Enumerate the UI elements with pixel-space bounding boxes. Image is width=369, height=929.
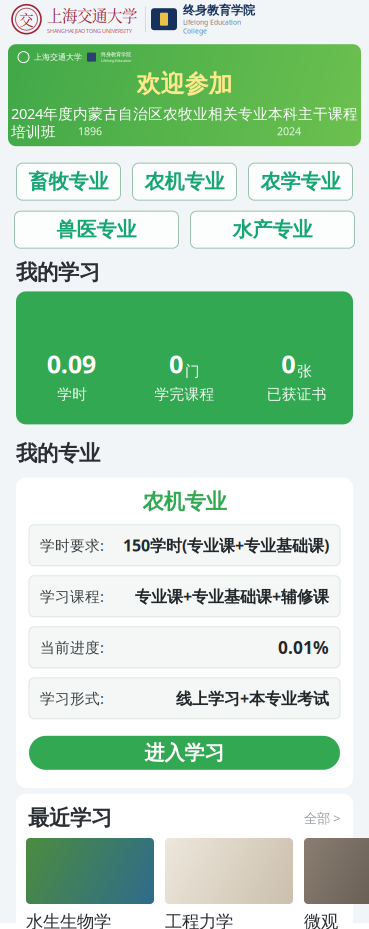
staticText: 2024: [277, 124, 301, 138]
staticText: 水产专业: [232, 217, 312, 242]
button[interactable]: 兽医专业: [14, 211, 178, 248]
staticText: 150学时(专业课+专业基础课): [123, 535, 329, 556]
button[interactable]: 工程力学: [165, 838, 293, 929]
staticText: 学时要求:: [40, 536, 104, 555]
button[interactable]: 水生生物学: [26, 838, 154, 929]
button[interactable]: 农机专业: [132, 163, 236, 200]
staticText: 学习课程:: [40, 587, 104, 606]
staticText: 0.09: [47, 347, 96, 380]
staticText: 终身教育学院: [101, 51, 131, 58]
staticText: 交: [19, 9, 34, 30]
staticText: 学完课程: [154, 385, 214, 403]
button[interactable]: 进入学习: [29, 736, 340, 770]
button[interactable]: 水产专业: [190, 211, 354, 248]
staticText: Lifelong Education: [101, 58, 131, 63]
staticText: 全部 >: [304, 809, 341, 827]
staticText: 张: [297, 362, 312, 380]
staticText: 最近学习: [28, 805, 112, 831]
staticText: 0: [169, 347, 183, 380]
staticText: College: [183, 27, 207, 35]
staticText: 农机专业: [144, 169, 224, 194]
staticText: 我的专业: [16, 440, 100, 467]
staticText: 已获证书: [267, 385, 327, 403]
button[interactable]: 农学专业: [248, 163, 352, 200]
staticText: 学时: [57, 385, 87, 403]
staticText: 进入学习: [144, 740, 224, 765]
staticText: 兽医专业: [56, 217, 136, 242]
staticText: 上海交通大学: [47, 4, 137, 26]
staticText: 学习形式:: [40, 689, 104, 708]
staticText: 终身教育学院: [183, 3, 255, 18]
staticText: 农学专业: [260, 169, 340, 194]
staticText: 欢迎参加: [136, 69, 232, 99]
staticText: 0.01%: [278, 636, 329, 659]
button[interactable]: 微观: [304, 838, 369, 929]
button[interactable]: 全部 >: [304, 809, 341, 827]
staticText: 2024年度内蒙古自治区农牧业相关专业本科主干课程培训班: [11, 104, 358, 141]
staticText: 门: [185, 362, 200, 380]
staticText: 线上学习+本专业考试: [176, 688, 329, 709]
staticText: 0: [281, 347, 295, 380]
staticText: 上海交通大学: [34, 52, 82, 62]
staticText: 1896: [78, 124, 102, 138]
staticText: SHANGHAI JIAO TONG UNIVERSITY: [47, 27, 132, 34]
staticText: 专业课+专业基础课+辅修课: [135, 586, 329, 607]
staticText: 工程力学: [165, 911, 233, 929]
staticText: 水生生物学: [26, 911, 111, 929]
staticText: 微观: [304, 911, 338, 929]
staticText: 农机专业: [142, 489, 226, 515]
staticText: Lifelong Education: [183, 18, 241, 27]
staticText: 畜牧专业: [28, 169, 108, 194]
staticText: 我的学习: [16, 259, 100, 285]
button[interactable]: 畜牧专业: [16, 163, 120, 200]
staticText: 当前进度:: [40, 638, 104, 657]
